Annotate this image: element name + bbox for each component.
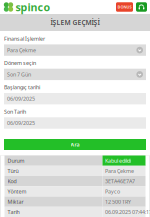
- staticText: 06/09/2025: [7, 119, 35, 127]
- staticText: 3ETA46E7A7: [105, 178, 135, 185]
- staticText: Para Çekme: [7, 47, 36, 54]
- staticText: Kabul edildi: [105, 157, 131, 164]
- staticText: Tarih: [7, 208, 19, 215]
- button[interactable]: Son 7 Gün: [4, 69, 146, 80]
- staticText: Durum: [7, 157, 24, 164]
- staticText: spinco: [15, 0, 50, 14]
- staticText: 12 500 TRY: [105, 198, 131, 205]
- staticText: Kod: [7, 178, 16, 185]
- staticText: İŞLEM GEÇMİŞİ: [50, 18, 99, 27]
- staticText: 06/09/2025: [7, 95, 35, 102]
- button[interactable]: spinco: [3, 0, 50, 14]
- staticText: Son 7 Gün: [7, 71, 31, 78]
- staticText: Türü: [7, 167, 18, 174]
- button[interactable]: 06/09/2025: [4, 117, 146, 129]
- staticText: Miktar: [7, 198, 23, 205]
- staticText: Son Tarih: [4, 108, 26, 115]
- staticText: Dönem seçin: [4, 59, 36, 67]
- staticText: Para Çekme: [105, 167, 134, 174]
- button[interactable]: 06/09/2025: [4, 93, 146, 104]
- button[interactable]: Para Çekme: [4, 44, 146, 56]
- staticText: Başlangıç tarihi: [4, 84, 40, 91]
- staticText: Yöntem: [7, 188, 26, 195]
- button[interactable]: Bonuses: [116, 2, 133, 12]
- staticText: Payco: [105, 188, 120, 195]
- button[interactable]: Live support: [136, 2, 147, 12]
- button[interactable]: Ara: [4, 139, 146, 150]
- staticText: 06.09.2025 07:44:17: [105, 208, 150, 215]
- staticText: Finansal İşlemler: [4, 35, 45, 42]
- staticText: Ara: [70, 141, 79, 148]
- staticText: BONUS: [117, 4, 131, 10]
